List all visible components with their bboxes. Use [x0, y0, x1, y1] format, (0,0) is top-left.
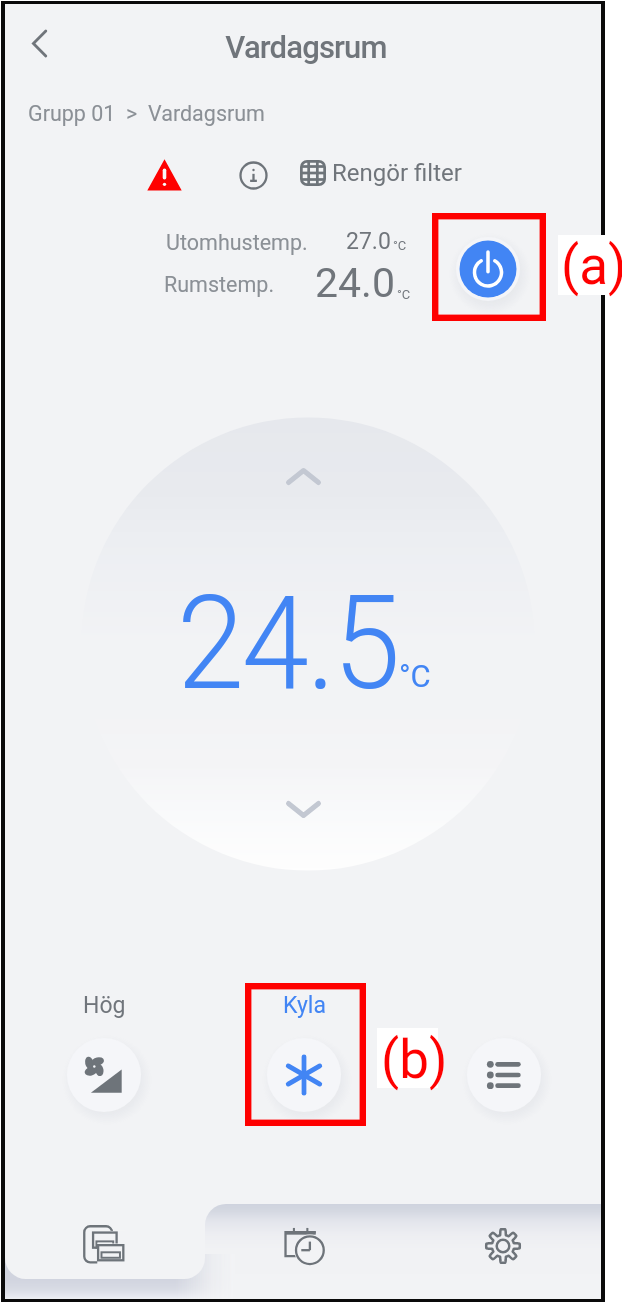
button[interactable]: Increase temperature: [276, 457, 331, 495]
staticText: °C: [399, 658, 431, 694]
staticText: °C: [393, 238, 407, 253]
staticText: Rengör filter: [332, 159, 462, 187]
staticText: Grupp 01 > Vardagsrum: [28, 101, 265, 126]
button[interactable]: Schedule: [256, 1209, 352, 1287]
staticText: (b): [381, 1029, 448, 1091]
button[interactable]: Fan speed: high: [59, 992, 149, 1120]
button[interactable]: Decrease temperature: [276, 790, 331, 828]
staticText: Rumstemp.: [164, 272, 275, 297]
staticText: Kyla: [283, 992, 326, 1019]
button[interactable]: Units: [56, 1209, 152, 1287]
button[interactable]: Settings: [455, 1209, 551, 1287]
staticText: Vardagsrum: [8, 29, 604, 65]
button[interactable]: Mode: cooling: [259, 992, 349, 1120]
staticText: 24.0: [315, 259, 395, 307]
staticText: (a): [561, 235, 622, 297]
staticText: 27.0: [346, 228, 391, 255]
staticText: °C: [397, 287, 411, 302]
button[interactable]: More options: [459, 992, 549, 1120]
staticText: Hög: [83, 992, 126, 1019]
button[interactable]: Information: [236, 158, 270, 192]
button[interactable]: Back: [12, 19, 56, 63]
button[interactable]: Power: [447, 228, 529, 310]
staticText: Utomhustemp.: [166, 230, 308, 255]
button[interactable]: Rengör filter: [300, 159, 462, 187]
staticText: 24.5: [177, 568, 399, 720]
button[interactable]: Warning: [143, 154, 185, 196]
